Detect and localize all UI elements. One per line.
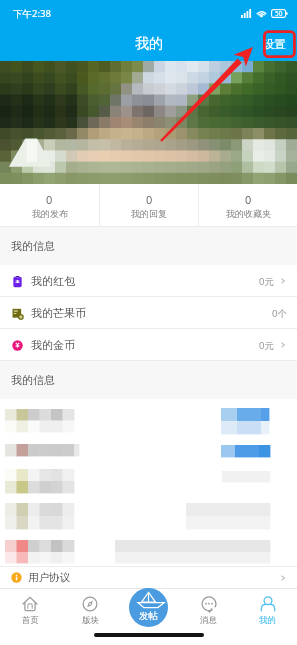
staticText: 0 [46, 192, 53, 207]
staticText: 0 [245, 192, 252, 207]
staticText: 0元 [259, 339, 274, 352]
staticText: 我的 [259, 615, 276, 626]
staticText: 我的金币 [31, 338, 75, 352]
staticText: 我的信息 [11, 373, 55, 387]
staticText: 我的回复 [131, 208, 167, 219]
staticText: 我的信息 [11, 239, 55, 253]
staticText: 我的发布 [32, 208, 68, 219]
staticText: 版块 [82, 615, 99, 626]
staticText: 50 [275, 9, 283, 18]
button[interactable]: 用户协议 [0, 566, 297, 589]
button[interactable]: 发帖 [129, 588, 168, 627]
button[interactable]: 我的金币 [0, 329, 297, 361]
button[interactable]: 设置 [261, 35, 288, 53]
staticText: 我的 [135, 35, 163, 53]
staticText: 用户协议 [28, 571, 70, 584]
staticText: 我的芒果币 [31, 306, 86, 320]
staticText: 0 [146, 192, 153, 207]
staticText: 下午2:38 [13, 7, 51, 20]
button[interactable]: 首页 [0, 590, 60, 635]
staticText: 我的收藏夹 [226, 208, 271, 219]
staticText: 0个 [272, 307, 287, 320]
staticText: 0元 [259, 275, 274, 288]
button[interactable]: 0 [199, 184, 297, 227]
staticText: 首页 [22, 615, 39, 626]
button[interactable]: 我的红包 [0, 265, 297, 297]
button[interactable]: 我的 [238, 590, 297, 635]
button[interactable]: 版块 [60, 590, 120, 635]
staticText: 发帖 [139, 610, 158, 622]
button[interactable]: 消息 [179, 590, 238, 635]
staticText: 我的红包 [31, 274, 75, 288]
button[interactable]: 0 [100, 184, 198, 227]
button[interactable]: 0 [0, 184, 99, 227]
staticText: 设置 [263, 37, 286, 51]
button[interactable]: 我的芒果币 [0, 297, 297, 329]
staticText: 消息 [200, 615, 217, 626]
